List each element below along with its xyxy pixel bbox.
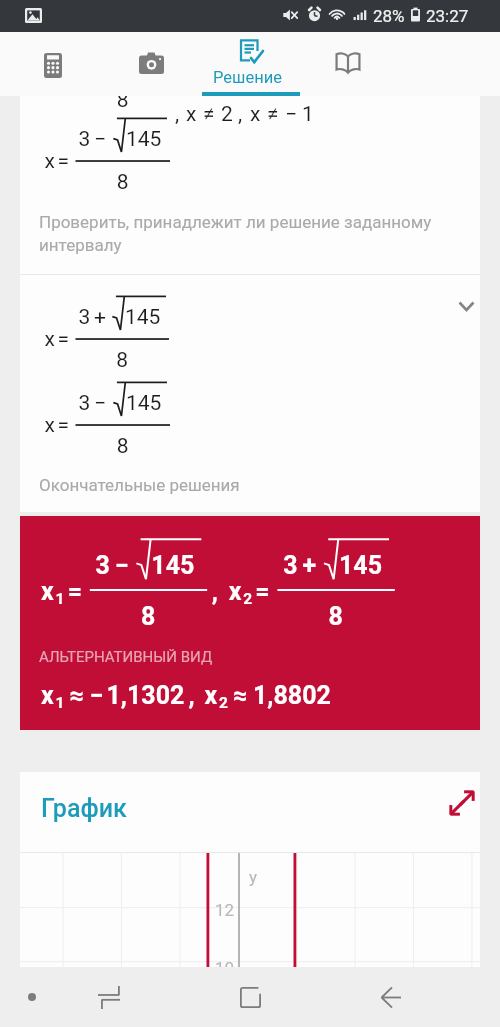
button[interactable]: Переключить клавиатуру <box>74 967 144 1027</box>
button[interactable]: Решение <box>201 32 299 96</box>
staticText: График <box>41 794 127 823</box>
button[interactable]: Скрыть клавиатуру <box>6 967 58 1027</box>
button[interactable]: Назад <box>356 967 426 1027</box>
button[interactable]: Учебник <box>299 32 397 96</box>
staticText: Окончательные решения <box>39 475 240 495</box>
staticText: Проверить, принадлежит ли решение заданн… <box>39 212 432 255</box>
button[interactable]: Камера <box>102 32 200 96</box>
staticText: АЛЬТЕРНАТИВНЫЙ ВИД <box>39 648 213 666</box>
staticText: 23:27 <box>426 6 469 26</box>
button[interactable]: Калькулятор <box>4 32 102 96</box>
button[interactable]: Во весь экран <box>446 787 478 819</box>
button[interactable]: Последние приложения <box>215 967 285 1027</box>
staticText: Решение <box>213 68 282 87</box>
button[interactable]: Развернуть <box>448 288 480 324</box>
staticText: 28% <box>373 6 405 26</box>
